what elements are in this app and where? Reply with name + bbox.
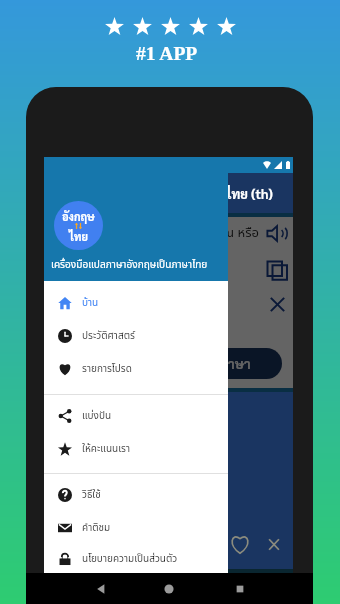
button[interactable]: อังกฤษ	[54, 201, 103, 250]
staticText: รายการโปรด	[82, 361, 132, 376]
staticText: คลิกเพื่อแปลภาษา	[150, 355, 251, 372]
staticText: ไทย	[69, 229, 88, 243]
button[interactable]: นโยบายความเป็นส่วนตัว	[44, 544, 228, 573]
button[interactable]: Copy	[265, 257, 290, 282]
staticText: ประวัติศาสตร์	[82, 328, 135, 343]
staticText: อังกฤษ (en) > ไทย (th)	[146, 185, 273, 202]
button[interactable]: Clear text	[268, 295, 287, 314]
button[interactable]: Close	[267, 537, 281, 552]
staticText: บ้าน	[82, 295, 99, 310]
button[interactable]: วิธีใช้	[44, 478, 228, 511]
staticText: แบ่งปัน	[82, 408, 112, 423]
staticText: #1 APP	[136, 43, 198, 65]
staticText: เครื่องมือแปลภาษาอังกฤษเป็นภาษาไทย	[51, 257, 208, 272]
button[interactable]: รายการโปรด	[44, 352, 228, 385]
staticText: คำติชม	[82, 520, 111, 535]
staticText: วิธีใช้	[82, 487, 101, 502]
staticText: ให้คะแนนเรา	[82, 441, 130, 456]
button[interactable]: Recents	[234, 583, 246, 595]
button[interactable]: Favorite	[229, 533, 251, 555]
button[interactable]: บ้าน	[44, 286, 228, 319]
button[interactable]: Back	[95, 583, 107, 595]
button[interactable]: Home	[163, 583, 175, 595]
staticText: อังกฤษ	[62, 209, 95, 223]
button[interactable]: แบ่งปัน	[44, 399, 228, 432]
button[interactable]: ประวัติศาสตร์	[44, 319, 228, 352]
staticText: พิมพ์คำหรือประโยคของคุณ หรือ	[54, 223, 259, 243]
button[interactable]: ให้คะแนนเรา	[44, 432, 228, 465]
staticText: นโยบายความเป็นส่วนตัว	[82, 551, 178, 566]
button[interactable]: คำติชม	[44, 511, 228, 544]
button[interactable]: Speak	[266, 222, 289, 245]
button[interactable]: คลิกเพื่อแปลภาษา	[90, 348, 282, 379]
